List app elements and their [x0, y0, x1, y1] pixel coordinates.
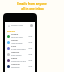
button[interactable]: Figma: [5, 57, 35, 63]
staticText: 10:24: [28, 53, 33, 55]
staticText: New follower: [11, 42, 23, 45]
staticText: Invitation: [11, 66, 20, 69]
button[interactable]: Account: [30, 24, 33, 27]
staticText: Primary: [7, 30, 16, 33]
button[interactable]: Slack: [5, 45, 35, 51]
staticText: Google: [11, 33, 19, 36]
staticText: Figma: [11, 57, 18, 60]
button[interactable]: Medium: [5, 51, 35, 57]
button[interactable]: Menu: [5, 22, 35, 29]
staticText: 10:24: [28, 59, 33, 61]
button[interactable]: Twitter: [5, 39, 35, 45]
staticText: 3 new messages: [11, 48, 26, 51]
staticText: Security alert: [11, 36, 23, 39]
staticText: 10:24: [28, 35, 33, 37]
staticText: Medium: [11, 51, 20, 54]
button[interactable]: LinkedIn: [5, 63, 35, 69]
staticText: Twitter: [11, 39, 19, 42]
staticText: Comment on file: [11, 60, 26, 63]
staticText: 10:24: [28, 47, 33, 49]
staticText: LinkedIn: [11, 63, 20, 66]
button[interactable]: Menu: [7, 24, 10, 27]
staticText: Slack: [11, 45, 17, 48]
staticText: Daily digest: [11, 54, 22, 57]
button[interactable]: Google: [5, 33, 35, 39]
staticText: Search mail: [11, 24, 23, 27]
staticText: Emails from anyone: [17, 2, 47, 6]
staticText: 10:24: [28, 65, 33, 67]
staticText: 10:24: [28, 41, 33, 43]
staticText: all in one inbox: [21, 7, 44, 11]
